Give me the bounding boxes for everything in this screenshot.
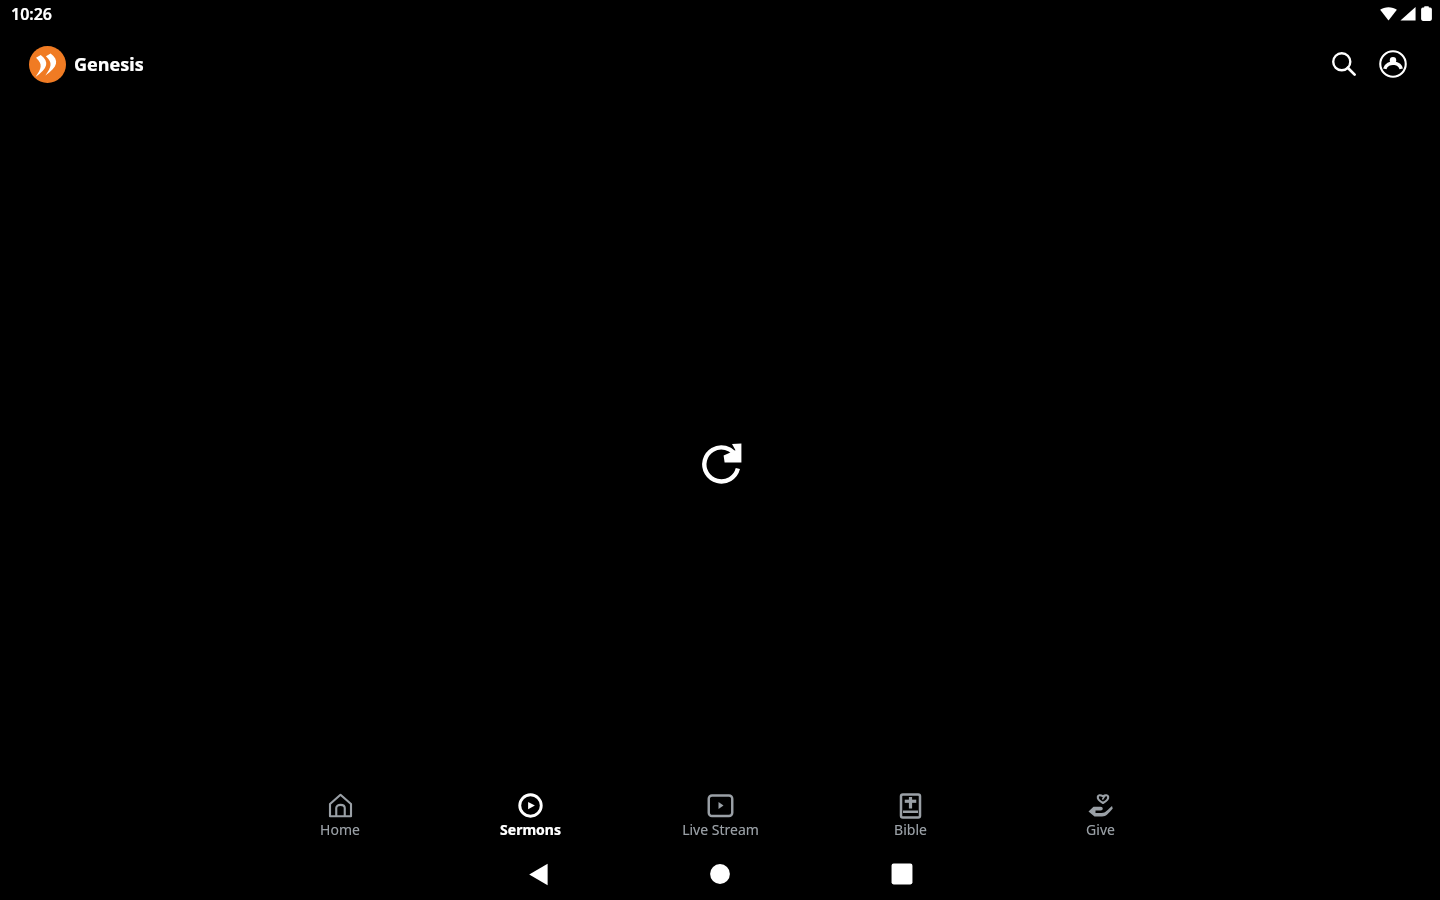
button[interactable]: Account xyxy=(1372,43,1414,85)
button[interactable]: Back xyxy=(518,854,558,894)
staticText: Genesis xyxy=(74,52,144,77)
button[interactable]: Bible xyxy=(815,782,1005,848)
button[interactable]: Search xyxy=(1323,43,1365,85)
button[interactable]: Recent apps xyxy=(882,854,922,894)
button[interactable]: Give xyxy=(1005,782,1195,848)
staticText: Bible xyxy=(894,820,927,839)
button[interactable]: Reload page xyxy=(699,440,747,488)
button[interactable]: Sermons xyxy=(435,782,625,848)
staticText: Live Stream xyxy=(682,820,759,839)
button[interactable]: Home xyxy=(700,854,740,894)
button[interactable]: Genesis xyxy=(29,46,144,83)
staticText: Home xyxy=(320,820,360,839)
button[interactable]: Home xyxy=(245,782,435,848)
staticText: Sermons xyxy=(500,820,561,839)
staticText: 10:26 xyxy=(11,3,53,25)
button[interactable]: Live Stream xyxy=(625,782,815,848)
staticText: Give xyxy=(1086,820,1115,839)
